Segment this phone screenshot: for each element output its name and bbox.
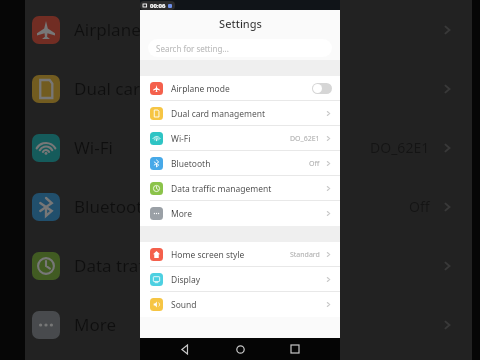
staticText: Search for setting... <box>156 43 229 54</box>
staticText: More <box>171 208 192 220</box>
button[interactable]: Wi-Fi <box>140 126 340 151</box>
staticText: Home screen style <box>171 249 245 261</box>
staticText: Bluetooth <box>74 195 153 218</box>
button[interactable]: Display <box>140 267 340 292</box>
button[interactable]: Dual card management <box>140 101 340 126</box>
button[interactable]: Airplane mode toggle <box>312 83 332 94</box>
button[interactable]: Home screen style <box>140 242 340 267</box>
staticText: Standard <box>290 250 320 260</box>
staticText: Settings <box>219 16 262 31</box>
staticText: More <box>74 313 116 336</box>
staticText: 00:06 <box>150 2 166 10</box>
button[interactable]: More <box>140 201 340 226</box>
staticText: Data traffic management <box>171 183 272 195</box>
staticText: Dual card management <box>171 108 266 120</box>
staticText: Sound <box>171 299 197 311</box>
staticText: Data traffic management <box>74 254 275 277</box>
button[interactable]: Bluetooth <box>140 151 340 176</box>
button[interactable]: Search for setting... <box>148 39 332 57</box>
staticText: Airplane mode <box>171 83 230 95</box>
staticText: DO_62E1 <box>290 134 320 144</box>
button[interactable]: Recents <box>285 339 305 359</box>
button[interactable]: Back <box>175 339 195 359</box>
button[interactable]: Sound <box>140 292 340 317</box>
staticText: Off <box>409 197 430 216</box>
staticText: Airplane mode <box>74 18 192 41</box>
staticText: Wi-Fi <box>74 136 113 159</box>
staticText: Bluetooth <box>171 158 211 170</box>
button[interactable]: Airplane mode <box>140 76 340 101</box>
staticText: Display <box>171 274 200 286</box>
button[interactable]: Home <box>230 339 250 359</box>
staticText: Wi-Fi <box>171 133 191 145</box>
button[interactable]: Data traffic management <box>140 176 340 201</box>
staticText: Off <box>309 159 320 169</box>
staticText: Dual card management <box>74 77 263 100</box>
staticText: DO_62E1 <box>370 138 430 157</box>
